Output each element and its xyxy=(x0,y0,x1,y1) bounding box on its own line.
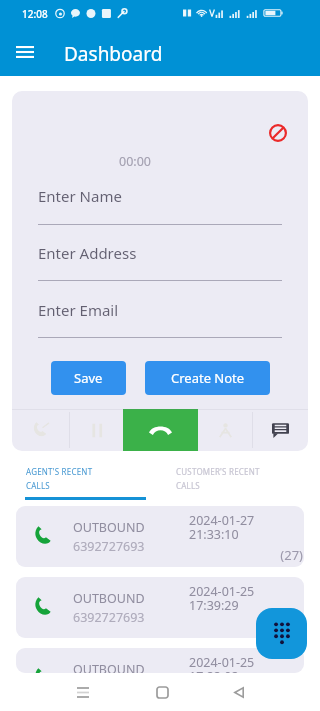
staticText: OUTBOUND xyxy=(73,519,145,536)
staticText: 2024-01-27 xyxy=(189,512,255,529)
staticText: Enter Name xyxy=(38,186,122,206)
staticText: 6392727693 xyxy=(73,538,145,555)
staticText: 17:39:29 xyxy=(189,597,239,614)
button[interactable]: Transfer call xyxy=(12,409,69,451)
button[interactable]: Recent apps xyxy=(69,678,97,706)
button[interactable]: Back xyxy=(225,678,253,706)
button[interactable]: CUSTOMER'S RECENT CALLS xyxy=(160,468,320,497)
staticText: OUTBOUND xyxy=(73,661,145,673)
button[interactable]: Hold call xyxy=(70,409,123,451)
staticText: (27) xyxy=(189,546,303,564)
staticText: 12:08 xyxy=(22,7,48,21)
staticText: 2024-01-25 xyxy=(189,583,255,600)
button[interactable]: AGENT'S RECENT CALLS xyxy=(0,468,160,497)
button[interactable]: OUTBOUND xyxy=(16,577,304,638)
button[interactable]: Block caller xyxy=(265,120,291,146)
button[interactable]: Messages xyxy=(253,409,308,451)
staticText: Save xyxy=(74,369,103,387)
staticText: OUTBOUND xyxy=(73,590,145,607)
button[interactable]: Home xyxy=(148,678,176,706)
staticText: AGENT'S RECENT CALLS xyxy=(26,466,93,492)
staticText: Create Note xyxy=(171,369,245,387)
staticText: Enter Email xyxy=(38,300,119,320)
button[interactable]: OUTBOUND xyxy=(16,506,304,567)
button[interactable]: Open navigation menu xyxy=(8,35,42,69)
button[interactable]: Save xyxy=(51,361,126,395)
staticText: 6392727693 xyxy=(73,609,145,626)
staticText: Dashboard xyxy=(64,41,163,67)
button[interactable]: Create Note xyxy=(145,361,270,395)
staticText: 21:33:10 xyxy=(189,526,239,543)
staticText: CUSTOMER'S RECENT CALLS xyxy=(176,466,260,492)
button[interactable]: Conference call xyxy=(198,409,252,451)
staticText: 00:00 xyxy=(105,153,165,170)
button[interactable]: Open dialpad xyxy=(256,608,307,659)
button[interactable]: OUTBOUND xyxy=(16,648,304,673)
staticText: 2024-01-25 xyxy=(189,654,255,671)
staticText: 17:22:02 xyxy=(189,668,239,673)
staticText: Enter Address xyxy=(38,243,137,263)
button[interactable]: End call xyxy=(123,409,198,451)
